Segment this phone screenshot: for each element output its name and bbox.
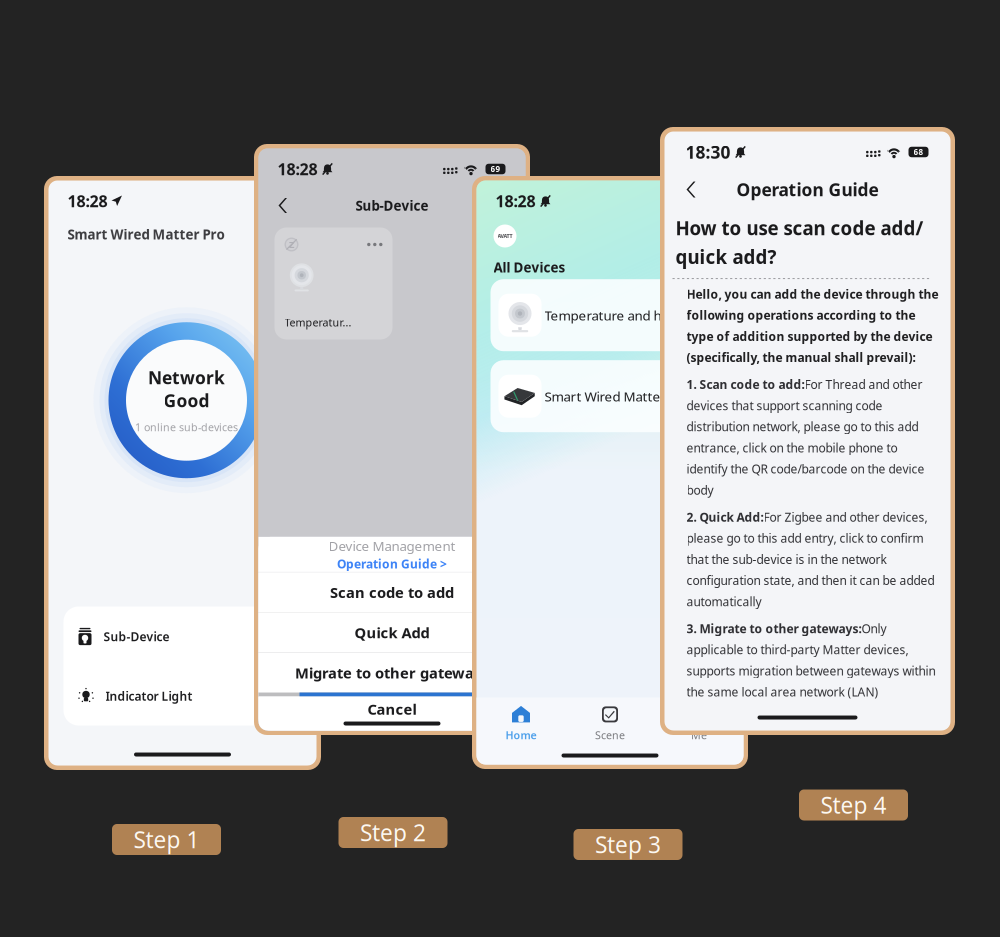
staticText: Quick Add xyxy=(354,623,429,642)
staticText: 18:28 xyxy=(277,158,317,180)
staticText: Hello, you can add the device through th… xyxy=(686,286,938,365)
staticText: Scene xyxy=(595,728,625,742)
button[interactable]: Home xyxy=(476,701,565,745)
button[interactable]: Smart Wired Matte xyxy=(490,360,729,432)
staticText: 18:30 xyxy=(685,140,730,163)
staticText: Temperatur... xyxy=(284,315,351,329)
staticText: 3. Migrate to other gateways:Only applic… xyxy=(686,620,935,700)
staticText: 1. Scan code to add:For Thread and other… xyxy=(686,376,924,498)
staticText: Good xyxy=(163,389,209,412)
button[interactable]: Temperature and humi xyxy=(490,279,729,351)
button[interactable]: Scene xyxy=(565,701,654,745)
button[interactable]: Scan code to add xyxy=(258,573,525,612)
button[interactable]: Step 3 xyxy=(573,829,682,860)
staticText: Temperature and humi xyxy=(544,306,684,324)
button[interactable]: Back xyxy=(273,193,294,218)
button[interactable]: Operation Guide > xyxy=(337,556,447,572)
button[interactable]: Step 2 xyxy=(338,817,447,848)
staticText: Operation Guide xyxy=(736,178,878,201)
staticText: Cancel xyxy=(367,699,416,719)
button[interactable]: Account xyxy=(493,224,516,247)
button[interactable]: Migrate to other gateways xyxy=(258,653,525,692)
staticText: 1 online sub-devices xyxy=(135,420,238,434)
staticText: Smart Wired Matte xyxy=(544,387,660,405)
staticText: 68 xyxy=(913,147,923,157)
staticText: Step 2 xyxy=(360,817,426,847)
staticText: 18:28 xyxy=(67,190,107,212)
button[interactable]: Cancel xyxy=(258,696,525,721)
staticText: Me xyxy=(691,728,707,742)
staticText: Network xyxy=(148,366,225,389)
button[interactable]: Back xyxy=(681,176,702,202)
staticText: 18:28 xyxy=(495,190,535,212)
staticText: Step 1 xyxy=(133,824,199,854)
staticText: Home xyxy=(505,728,536,742)
staticText: 2. Quick Add:For Zigbee and other device… xyxy=(686,509,934,609)
staticText: 69 xyxy=(490,164,500,174)
staticText: Z xyxy=(289,238,294,251)
staticText: How to use scan code add/quick add? xyxy=(675,215,923,269)
staticText: Scan code to add xyxy=(330,583,454,602)
button[interactable]: Me xyxy=(654,701,743,745)
staticText: Smart Wired Matter Pro xyxy=(67,225,224,243)
button[interactable]: Step 4 xyxy=(799,789,908,820)
button[interactable]: Sub-Device xyxy=(63,606,301,666)
button[interactable]: Indicator Light xyxy=(63,666,301,725)
button[interactable]: Quick Add xyxy=(258,613,525,652)
staticText: Sub-Device xyxy=(355,197,428,214)
button[interactable]: Step 1 xyxy=(112,824,221,855)
staticText: Operation Guide > xyxy=(337,556,447,572)
staticText: Migrate to other gateways xyxy=(295,663,489,682)
staticText: AVATT xyxy=(497,232,512,240)
staticText: Sub-Device xyxy=(103,628,169,644)
staticText: Step 3 xyxy=(595,829,661,859)
staticText: Device Management xyxy=(328,537,455,555)
staticText: All Devices xyxy=(493,258,565,276)
staticText: Indicator Light xyxy=(105,688,192,704)
staticText: Step 4 xyxy=(820,790,886,820)
